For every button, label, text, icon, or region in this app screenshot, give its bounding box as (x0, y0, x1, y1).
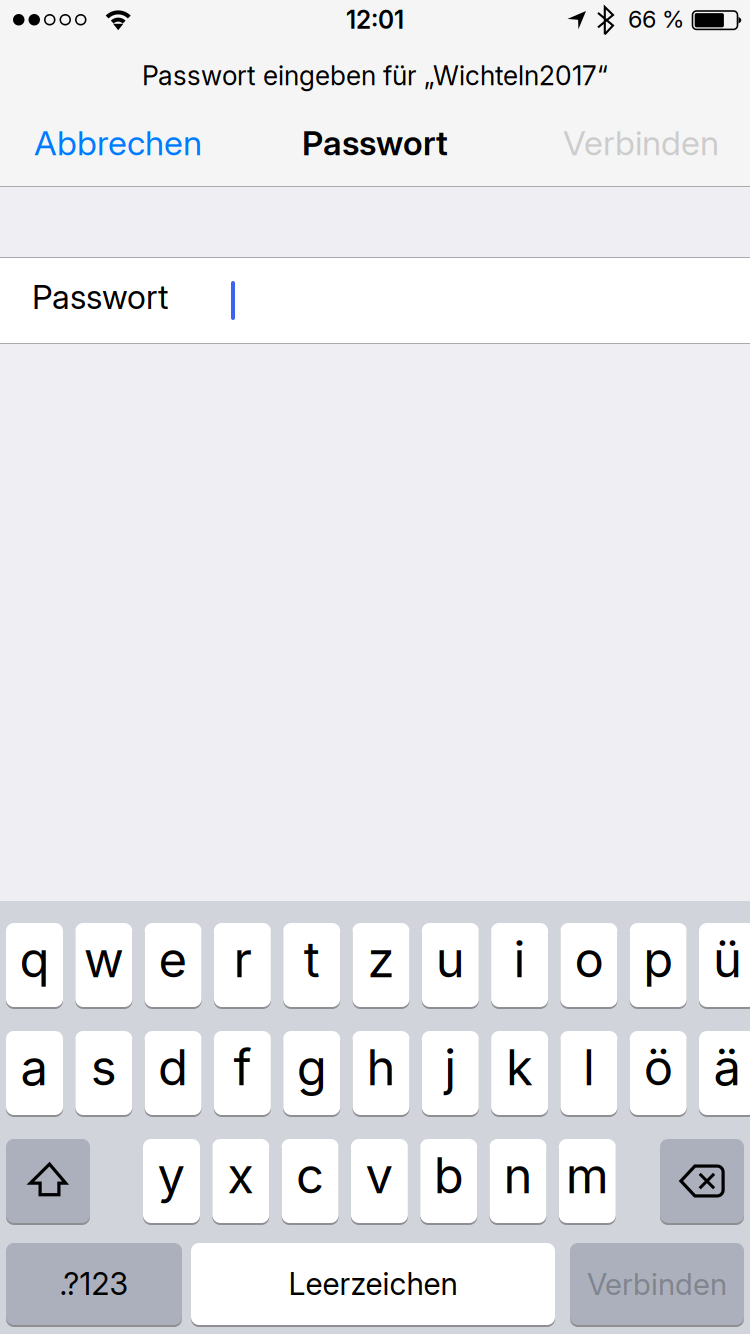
button[interactable]: k (491, 1030, 548, 1116)
button[interactable]: Passwort (0, 257, 750, 344)
staticText: ü (713, 930, 742, 989)
staticText: u (436, 930, 465, 989)
staticText: c (296, 1146, 324, 1205)
staticText: v (365, 1146, 393, 1205)
staticText: p (643, 930, 673, 989)
button[interactable]: ü (699, 922, 750, 1008)
button[interactable]: ä (699, 1030, 750, 1116)
button[interactable]: Abbrechen (0, 109, 216, 176)
button[interactable]: .?123 (6, 1242, 182, 1326)
staticText: l (583, 1038, 595, 1097)
staticText: y (157, 1146, 185, 1205)
button[interactable]: Verbinden (570, 1242, 744, 1326)
button[interactable]: d (145, 1030, 202, 1116)
button[interactable]: m (559, 1138, 616, 1224)
staticText: Passwort (32, 277, 168, 317)
staticText: g (297, 1038, 327, 1097)
button[interactable]: z (352, 922, 409, 1008)
staticText: q (19, 930, 49, 989)
staticText: ä (713, 1038, 741, 1097)
staticText: i (514, 930, 526, 989)
staticText: Leerzeichen (288, 1265, 457, 1302)
staticText: b (434, 1146, 464, 1205)
staticText: h (366, 1038, 395, 1097)
staticText: d (158, 1038, 188, 1097)
staticText: w (84, 930, 124, 989)
button[interactable]: h (352, 1030, 409, 1116)
staticText: x (227, 1146, 254, 1205)
staticText: o (574, 930, 603, 989)
button[interactable]: y (143, 1138, 200, 1224)
button[interactable]: g (283, 1030, 340, 1116)
staticText: .?123 (59, 1265, 128, 1302)
button[interactable]: ö (630, 1030, 687, 1116)
staticText: r (233, 930, 251, 989)
button[interactable]: s (75, 1030, 132, 1116)
staticText: a (20, 1038, 48, 1097)
staticText: t (304, 930, 320, 989)
staticText: m (566, 1146, 609, 1205)
button[interactable]: q (6, 922, 63, 1008)
staticText: 66 % (628, 5, 684, 33)
staticText: f (233, 1038, 251, 1097)
staticText: Abbrechen (34, 122, 202, 163)
button[interactable]: v (351, 1138, 408, 1224)
staticText: Verbinden (563, 122, 719, 163)
staticText: k (506, 1038, 533, 1097)
button[interactable]: n (489, 1138, 546, 1224)
staticText: Passwort (302, 123, 448, 163)
staticText: ö (644, 1038, 673, 1097)
button[interactable]: f (214, 1030, 271, 1116)
button[interactable]: Leerzeichen (191, 1242, 555, 1326)
button[interactable]: Verbinden (549, 109, 750, 176)
button[interactable]: Umschalttaste (6, 1138, 90, 1224)
button[interactable]: x (212, 1138, 269, 1224)
button[interactable]: b (420, 1138, 477, 1224)
staticText: z (367, 930, 394, 989)
button[interactable]: p (630, 922, 687, 1008)
button[interactable]: Löschen (660, 1138, 744, 1224)
staticText: s (91, 1038, 117, 1097)
button[interactable]: r (214, 922, 271, 1008)
staticText: j (444, 1038, 456, 1097)
button[interactable]: j (422, 1030, 479, 1116)
staticText: e (159, 930, 188, 989)
staticText: 12:01 (346, 5, 404, 35)
button[interactable]: i (491, 922, 548, 1008)
button[interactable]: w (75, 922, 132, 1008)
staticText: Passwort eingeben für „Wichteln2017“ (142, 59, 608, 92)
button[interactable]: e (145, 922, 202, 1008)
button[interactable]: l (560, 1030, 617, 1116)
staticText: n (503, 1146, 532, 1205)
button[interactable]: o (560, 922, 617, 1008)
button[interactable]: c (282, 1138, 339, 1224)
staticText: Verbinden (587, 1266, 727, 1302)
button[interactable]: a (6, 1030, 63, 1116)
button[interactable]: u (422, 922, 479, 1008)
button[interactable]: t (283, 922, 340, 1008)
